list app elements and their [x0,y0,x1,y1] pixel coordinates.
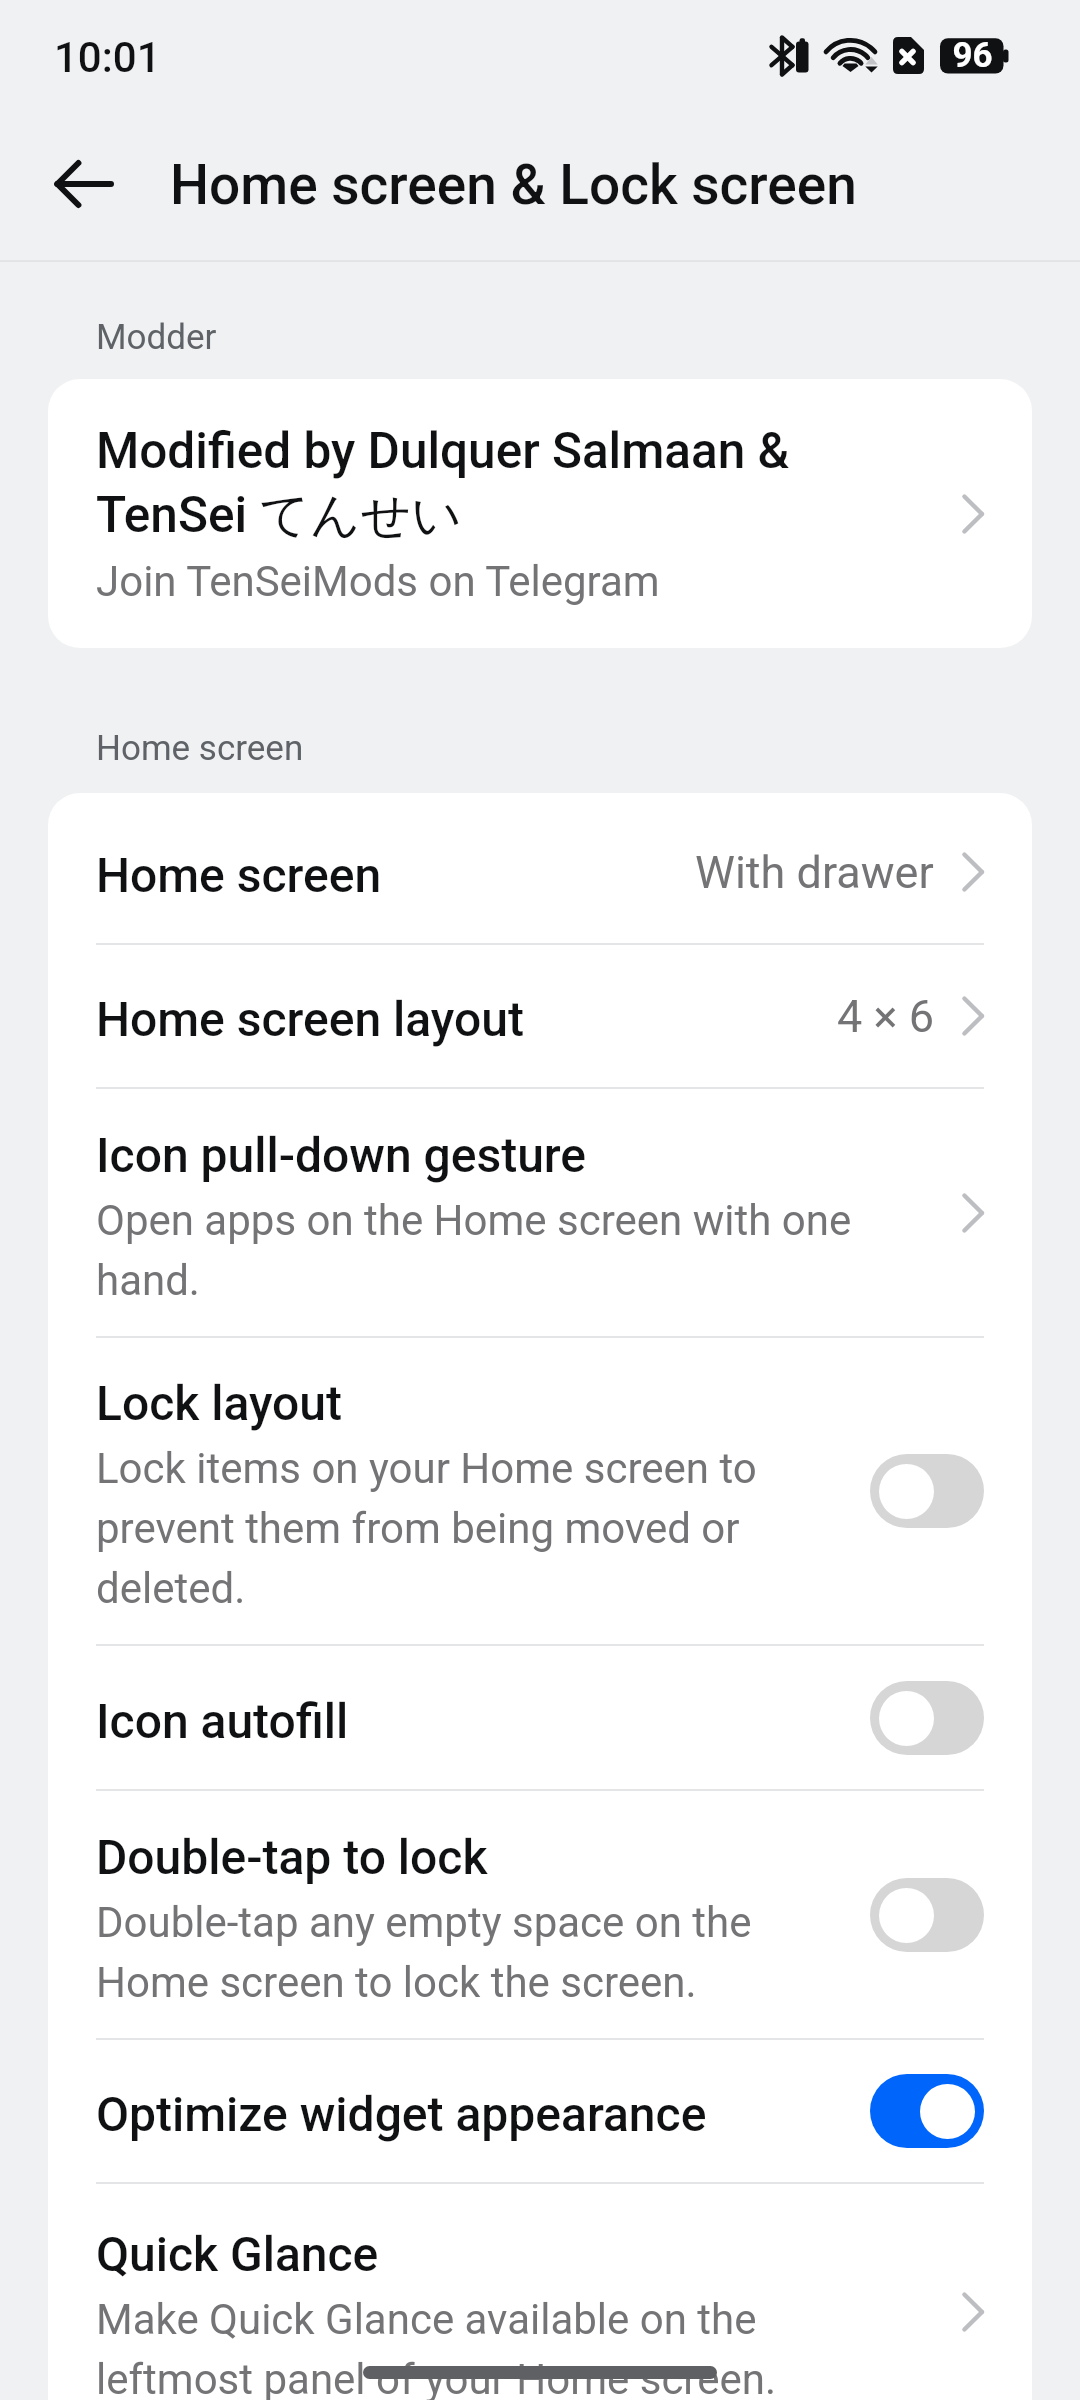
button[interactable]: Switch off [870,1681,984,1755]
staticText: Home screen layout [96,991,524,1047]
button[interactable]: Quick Glance [48,2184,1032,2400]
button[interactable]: Icon pull-down gesture [48,1089,1032,1336]
staticText: Modified by Dulquer Salmaan & TenSei てんせ… [96,422,790,547]
button[interactable]: Modified by Dulquer Salmaan & TenSei てんせ… [48,379,1032,648]
staticText: Double-tap any empty space on the Home s… [96,1898,752,2007]
staticText: Lock layout [96,1375,342,1431]
staticText: Quick Glance [96,2226,379,2282]
staticText: Make Quick Glance available on the leftm… [96,2295,777,2400]
button[interactable]: Switch off [870,1878,984,1952]
staticText: Home screen [96,847,382,903]
button[interactable]: Home screen [48,801,1032,943]
staticText: Icon autofill [96,1693,349,1749]
staticText: 96 [952,35,993,76]
button[interactable]: Icon autofill [48,1646,1032,1789]
staticText: 4 × 6 [837,990,934,1043]
button[interactable]: Optimize widget appearance [48,2040,1032,2182]
staticText: Icon pull-down gesture [96,1127,587,1183]
button[interactable]: Back [36,137,132,233]
staticText: 10:01 [54,33,161,82]
staticText: Lock items on your Home screen to preven… [96,1444,757,1613]
button[interactable]: Switch off [870,1454,984,1528]
staticText: Home screen [96,728,304,769]
staticText: Open apps on the Home screen with one ha… [96,1196,852,1305]
staticText: Modder [96,317,217,358]
staticText: Home screen & Lock screen [170,153,857,217]
staticText: Optimize widget appearance [96,2086,707,2142]
staticText: Join TenSeiMods on Telegram [96,557,660,606]
button[interactable]: Double-tap to lock [48,1791,1032,2038]
staticText: With drawer [695,846,934,899]
button[interactable]: Lock layout [48,1338,1032,1644]
staticText: Double-tap to lock [96,1829,488,1885]
button[interactable]: Home screen layout [48,945,1032,1087]
button[interactable]: Switch on [870,2074,984,2148]
